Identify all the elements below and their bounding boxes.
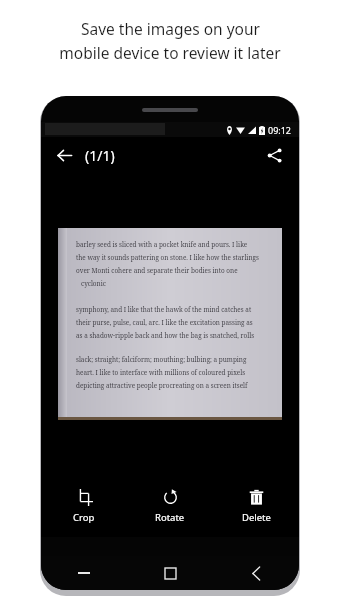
button[interactable]: Home xyxy=(127,556,213,590)
staticText: Delete xyxy=(242,511,271,524)
staticText: 09:12 xyxy=(268,124,292,136)
staticText: barley seed is sliced with a pocket knif… xyxy=(76,240,248,249)
button[interactable]: Back xyxy=(213,556,299,590)
staticText: cyclonic xyxy=(76,279,106,288)
staticText: as a shadow-ripple back and how the bag … xyxy=(76,331,255,340)
button[interactable]: Share xyxy=(259,140,289,170)
staticText: depicting attractive people procreating … xyxy=(76,381,248,390)
staticText: Save the images on your xyxy=(81,18,260,39)
staticText: the way it sounds pattering on stone. I … xyxy=(76,253,259,262)
staticText: their purse, pulse, caul, arc. I like th… xyxy=(76,318,253,327)
staticText: Rotate xyxy=(155,511,185,524)
button[interactable]: Recent apps xyxy=(41,556,127,590)
button[interactable]: Crop xyxy=(41,483,127,530)
staticText: Crop xyxy=(73,511,95,524)
button[interactable]: Delete xyxy=(213,483,299,530)
staticText: (1/1) xyxy=(85,146,115,165)
button[interactable]: Rotate xyxy=(127,483,213,530)
staticText: symphony, and I like that the hawk of th… xyxy=(76,305,252,314)
button[interactable]: Back xyxy=(49,140,79,170)
staticText: over Monti cohere and separate their bod… xyxy=(76,266,238,275)
staticText: mobile device to review it later xyxy=(59,42,281,63)
staticText: slack; straight; falciform; mouthing; bu… xyxy=(76,355,247,364)
staticText: heart. I like to interface with millions… xyxy=(76,368,246,377)
